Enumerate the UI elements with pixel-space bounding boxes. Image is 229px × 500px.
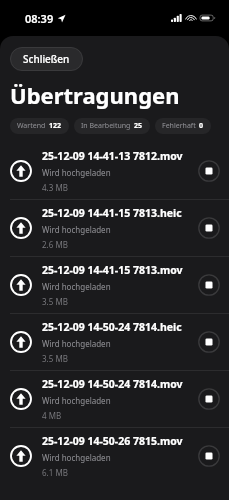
button[interactable]: Schließen xyxy=(10,47,83,71)
staticText: 08:39 xyxy=(25,11,54,26)
staticText: Wartend xyxy=(17,121,46,131)
button[interactable]: Wartend xyxy=(10,118,69,134)
button[interactable]: Übertragung stoppen xyxy=(197,444,221,468)
button[interactable]: 25-12-09 14-50-26 7815.mov xyxy=(0,428,229,484)
staticText: 2.6 MB xyxy=(42,239,68,250)
staticText: Wird hochgeladen xyxy=(42,338,111,349)
staticText: Übertragungen xyxy=(10,80,180,110)
staticText: 3.5 MB xyxy=(42,353,68,364)
button[interactable]: 25-12-09 14-50-24 7814.heic xyxy=(0,314,229,370)
button[interactable]: Übertragung stoppen xyxy=(197,387,221,411)
button[interactable]: 25-12-09 14-50-24 7814.mov xyxy=(0,371,229,427)
button[interactable]: Fehlerhaft xyxy=(155,118,211,134)
staticText: Wird hochgeladen xyxy=(42,281,111,292)
staticText: 122 xyxy=(49,121,62,131)
staticText: Schließen xyxy=(23,52,70,66)
staticText: 25-12-09 14-50-24 7814.heic xyxy=(42,320,182,334)
staticText: 25 xyxy=(134,121,143,131)
button[interactable]: 25-12-09 14-41-15 7813.mov xyxy=(0,257,229,313)
staticText: Wird hochgeladen xyxy=(42,167,111,178)
button[interactable]: In Bearbeitung xyxy=(74,118,150,134)
staticText: 6.1 MB xyxy=(42,467,68,478)
staticText: Wird hochgeladen xyxy=(42,395,111,406)
staticText: 25-12-09 14-41-15 7813.mov xyxy=(42,263,183,277)
button[interactable]: 25-12-09 14-41-13 7812.mov xyxy=(0,143,229,199)
staticText: Fehlerhaft xyxy=(162,121,196,131)
button[interactable]: Übertragung stoppen xyxy=(197,273,221,297)
staticText: 3.5 MB xyxy=(42,296,68,307)
staticText: 25-12-09 14-41-13 7812.mov xyxy=(42,149,183,163)
staticText: 0 xyxy=(199,121,204,131)
button[interactable]: Übertragung stoppen xyxy=(197,216,221,240)
staticText: 25-12-09 14-50-24 7814.mov xyxy=(42,377,183,391)
button[interactable]: 25-12-09 14-41-15 7813.heic xyxy=(0,200,229,256)
button[interactable]: Übertragung stoppen xyxy=(197,159,221,183)
button[interactable]: Übertragung stoppen xyxy=(197,330,221,354)
staticText: 4.3 MB xyxy=(42,182,68,193)
staticText: 4 MB xyxy=(42,410,62,421)
staticText: In Bearbeitung xyxy=(81,121,131,131)
staticText: Wird hochgeladen xyxy=(42,224,111,235)
staticText: 25-12-09 14-50-26 7815.mov xyxy=(42,434,183,448)
staticText: 25-12-09 14-41-15 7813.heic xyxy=(42,206,182,220)
staticText: Wird hochgeladen xyxy=(42,452,111,463)
